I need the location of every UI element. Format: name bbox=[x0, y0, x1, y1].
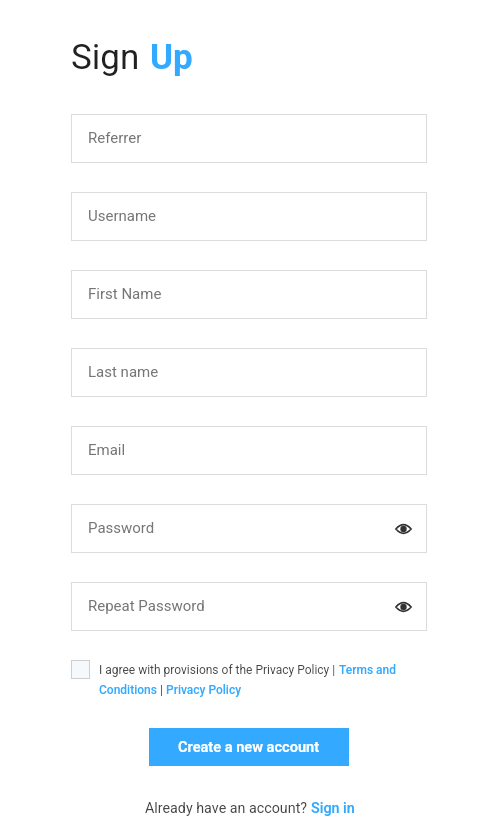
button[interactable]: Show password bbox=[387, 591, 419, 623]
button[interactable]: Referrer bbox=[71, 114, 427, 163]
staticText: Create a new account bbox=[178, 738, 320, 755]
button[interactable]: Email bbox=[71, 426, 427, 475]
button[interactable]: Terms and bbox=[339, 663, 396, 677]
staticText: I agree with provisions of the Privacy P… bbox=[99, 663, 339, 677]
button[interactable]: Password bbox=[71, 504, 427, 553]
staticText: Username bbox=[88, 207, 157, 225]
button[interactable]: Show password bbox=[387, 513, 419, 545]
button[interactable]: Sign in bbox=[311, 800, 355, 817]
staticText: Referrer bbox=[88, 129, 142, 147]
staticText: Already have an account? bbox=[145, 800, 311, 817]
staticText: Up bbox=[150, 37, 193, 78]
button[interactable]: Last name bbox=[71, 348, 427, 397]
staticText: Last name bbox=[88, 363, 159, 381]
button[interactable]: Conditions bbox=[99, 683, 157, 697]
button[interactable]: Username bbox=[71, 192, 427, 241]
button[interactable]: Repeat Password bbox=[71, 582, 427, 631]
staticText: Email bbox=[88, 441, 126, 459]
staticText: | bbox=[157, 683, 166, 697]
button[interactable]: Create a new account bbox=[149, 728, 349, 766]
button[interactable]: First Name bbox=[71, 270, 427, 319]
button[interactable]: Privacy Policy bbox=[166, 683, 242, 697]
staticText: Repeat Password bbox=[88, 597, 205, 615]
button[interactable]: I agree with provisions of the Privacy P… bbox=[71, 660, 90, 679]
staticText: First Name bbox=[88, 285, 162, 303]
staticText: Password bbox=[88, 519, 155, 537]
staticText: Sign bbox=[71, 37, 140, 78]
